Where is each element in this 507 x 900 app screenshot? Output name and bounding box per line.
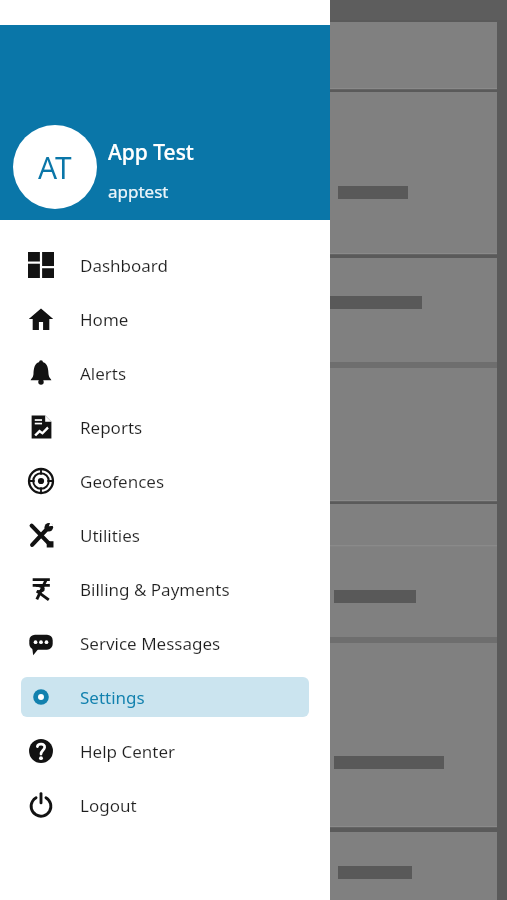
staticText: Utilities <box>80 524 140 547</box>
button[interactable]: Service Messages <box>21 623 309 663</box>
button[interactable]: Reports <box>21 407 309 447</box>
staticText: Home <box>80 308 129 331</box>
staticText: AT <box>38 147 72 188</box>
staticText: App Test <box>108 138 194 167</box>
button[interactable]: Home <box>21 299 309 339</box>
button[interactable]: AT <box>0 25 330 220</box>
button[interactable]: Settings <box>21 677 309 717</box>
staticText: Reports <box>80 416 143 439</box>
button[interactable]: Utilities <box>21 515 309 555</box>
staticText: Settings <box>80 686 145 709</box>
staticText: Geofences <box>80 470 165 493</box>
staticText: Help Center <box>80 740 176 763</box>
staticText: Service Messages <box>80 632 221 655</box>
button[interactable]: Geofences <box>21 461 309 501</box>
staticText: Dashboard <box>80 254 169 277</box>
staticText: Billing & Payments <box>80 578 230 601</box>
button[interactable]: Logout <box>21 785 309 825</box>
button[interactable]: Help Center <box>21 731 309 771</box>
staticText: apptest <box>108 180 169 203</box>
staticText: Alerts <box>80 362 127 385</box>
button[interactable]: Alerts <box>21 353 309 393</box>
button[interactable]: Billing & Payments <box>21 569 309 609</box>
staticText: Logout <box>80 794 137 817</box>
button[interactable]: Dashboard <box>21 245 309 285</box>
